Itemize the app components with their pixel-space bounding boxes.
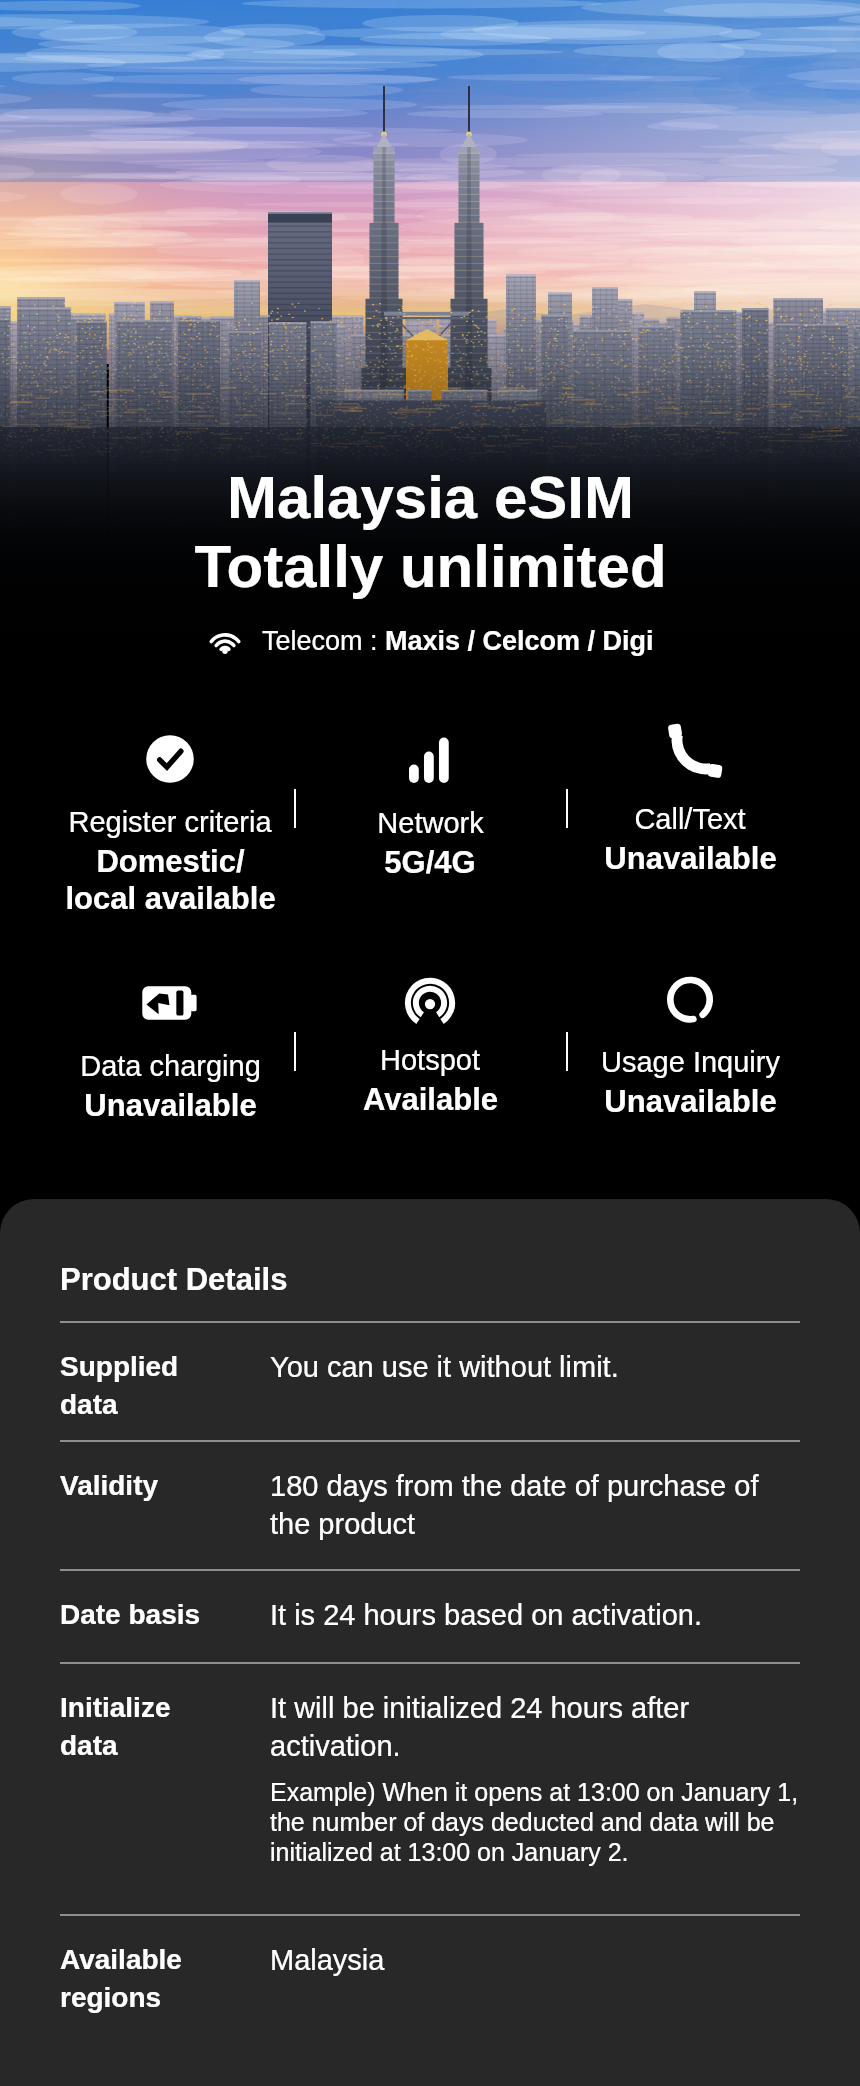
staticText: Telecom : Maxis / Celcom / Digi [262,626,654,656]
staticText: Hotspot [380,1044,480,1076]
staticText: Initialize data [60,1692,171,1761]
staticText: Unavailable [84,1088,257,1123]
staticText: Malaysia eSIM Totally unlimited [194,464,667,600]
staticText: Malaysia [270,1944,385,1976]
staticText: 180 days from the date of purchase of th… [270,1470,800,1540]
button[interactable]: Hotspot: Available [300,943,560,1117]
staticText: Domestic/ local available [65,844,276,915]
button[interactable]: Network: 5G/4G [300,700,560,880]
staticText: Data charging [80,1050,261,1082]
staticText: Product Details [60,1262,288,1297]
staticText: Call/Text [634,803,746,835]
staticText: Unavailable [604,841,777,876]
staticText: 5G/4G [384,845,476,880]
staticText: Network [377,807,484,839]
staticText: Date basis [60,1599,201,1630]
staticText: Unavailable [604,1084,777,1119]
staticText: Register criteria [68,806,272,838]
staticText: Validity [60,1470,159,1501]
button[interactable]: Usage Inquiry: Unavailable [560,943,820,1119]
button[interactable]: Data charging: Unavailable [40,943,300,1123]
button[interactable]: Register criteria: Domestic / local avai… [40,700,300,915]
staticText: It is 24 hours based on activation. [270,1599,703,1631]
staticText: You can use it without limit. [270,1351,619,1383]
staticText: It will be initialized 24 hours after ac… [270,1692,800,1762]
staticText: Usage Inquiry [601,1046,780,1078]
staticText: Supplied data [60,1351,179,1420]
staticText: Example) When it opens at 13:00 on Janua… [270,1778,800,1866]
staticText: Available regions [60,1944,182,2013]
button[interactable]: Call/Text: Unavailable [560,700,820,876]
staticText: Available [363,1082,498,1117]
